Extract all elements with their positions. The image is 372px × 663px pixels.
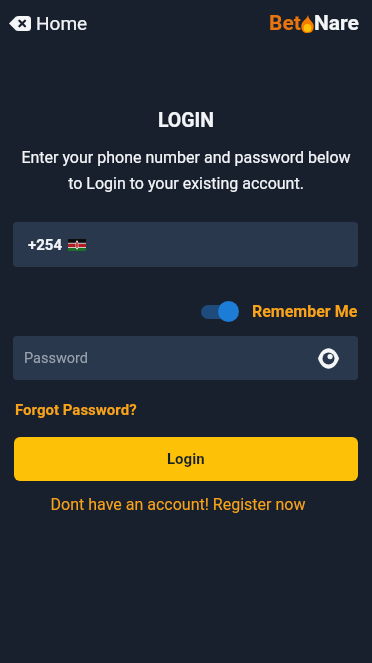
staticText: Bet — [269, 11, 301, 36]
staticText: Nare — [314, 11, 359, 36]
staticText: Remember Me — [252, 302, 358, 321]
button[interactable]: Password — [13, 336, 358, 380]
staticText: LOGIN — [0, 109, 372, 132]
button[interactable]: Home — [9, 12, 88, 34]
button[interactable]: Login — [14, 437, 358, 481]
staticText: Password — [24, 350, 89, 367]
staticText: Enter your phone number and password bel… — [0, 148, 372, 192]
staticText: Login — [167, 450, 205, 468]
button[interactable] — [201, 300, 239, 323]
button[interactable]: Forgot Password? — [15, 401, 137, 419]
staticText: Home — [36, 12, 88, 34]
button[interactable]: +254 — [13, 222, 358, 267]
staticText: +254 — [28, 236, 63, 254]
button[interactable]: Dont have an account! Register now — [0, 495, 364, 514]
